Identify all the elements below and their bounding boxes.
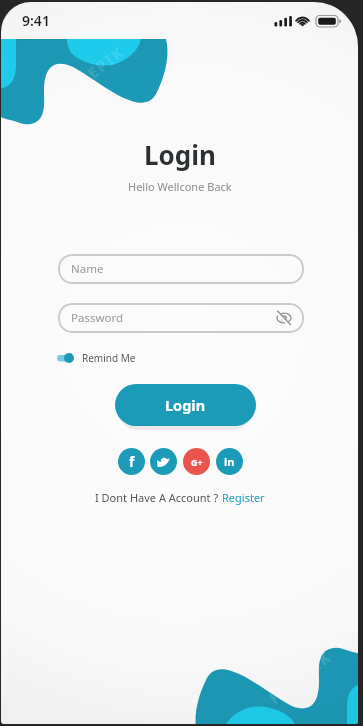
button[interactable]: Remind Me	[56, 351, 136, 365]
staticText: Remind Me	[82, 351, 136, 365]
staticText: FREEPIK	[265, 646, 335, 708]
button[interactable]: Name	[58, 254, 304, 284]
staticText: FREEPIK	[58, 41, 128, 103]
staticText: Name	[71, 261, 104, 277]
staticText: I Dont Have A Account ?	[95, 490, 222, 505]
staticText: Password	[71, 310, 124, 326]
staticText: Login	[144, 137, 216, 172]
button[interactable]: Register	[222, 490, 265, 505]
button[interactable]: Password	[58, 303, 304, 333]
staticText: 9:41	[22, 11, 50, 30]
button[interactable]	[150, 448, 177, 475]
staticText: G+	[191, 456, 203, 468]
staticText: f	[129, 453, 135, 471]
button[interactable]: G+	[183, 448, 210, 475]
button[interactable]: Login	[115, 384, 256, 426]
button[interactable]: in	[216, 448, 243, 475]
staticText: Login	[165, 395, 206, 415]
button[interactable]: f	[118, 448, 145, 475]
staticText: Hello Wellcone Back	[128, 179, 232, 194]
staticText: in	[224, 454, 235, 469]
